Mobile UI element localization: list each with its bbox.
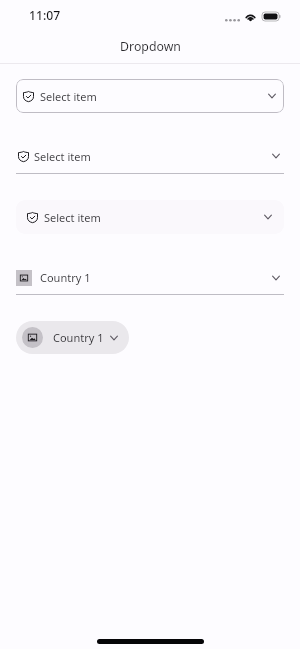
button[interactable]: Country 1 [16, 261, 284, 295]
staticText: Select item [34, 149, 91, 164]
other: Cellular signal [225, 11, 240, 21]
staticText: Country 1 [53, 330, 104, 345]
button[interactable]: Select item [16, 200, 284, 234]
other: Wi-Fi [245, 11, 256, 21]
other: Battery [262, 12, 281, 21]
staticText: Country 1 [40, 270, 91, 285]
staticText: Dropdown [120, 38, 181, 55]
button[interactable]: Select item [16, 139, 284, 174]
staticText: Select item [40, 89, 97, 104]
staticText: 11:07 [29, 7, 61, 24]
button[interactable]: Select item [16, 79, 284, 113]
button[interactable]: Country 1 [16, 321, 129, 354]
staticText: Select item [44, 210, 101, 225]
